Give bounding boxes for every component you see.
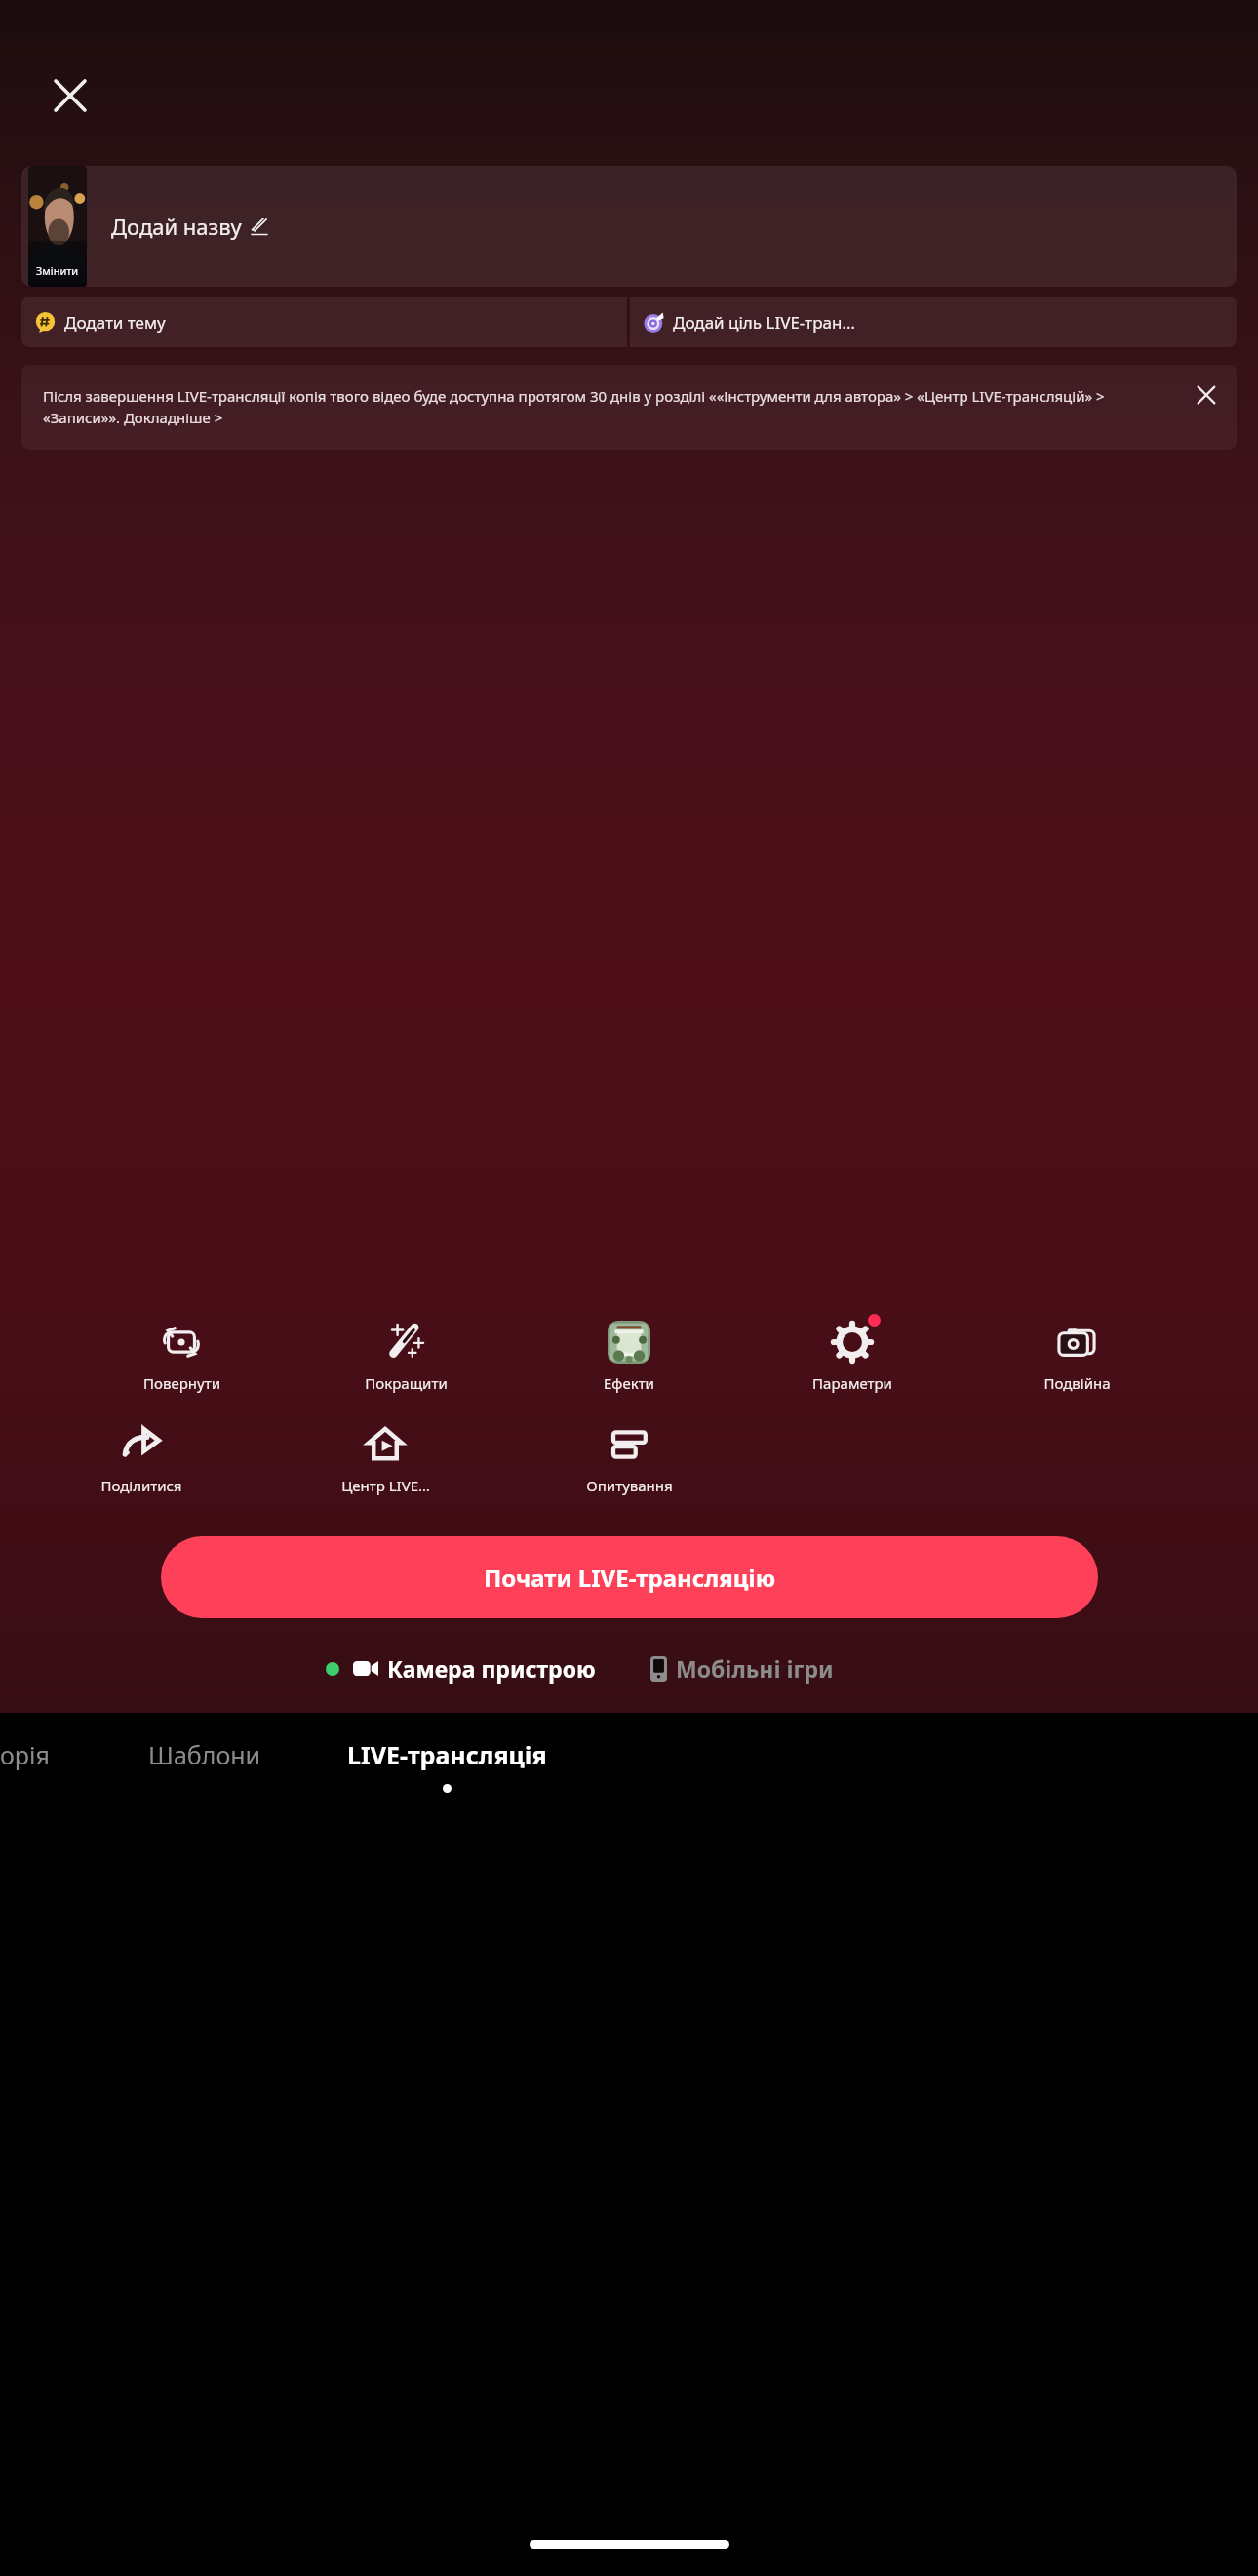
button[interactable]: Покращити (344, 1312, 467, 1397)
staticText: Змінити (36, 263, 79, 278)
staticText: Почати LIVE-трансляцію (484, 1562, 776, 1594)
button[interactable]: Додай ціль LIVE-тран… (630, 297, 1237, 347)
staticText: Подвійна (1043, 1373, 1111, 1393)
staticText: LIVE-трансляція (347, 1738, 547, 1771)
staticText: Додати тему (64, 311, 166, 334)
staticText: Камера пристрою (387, 1653, 596, 1684)
staticText: Опитування (586, 1476, 673, 1495)
staticText: Повернути (143, 1373, 220, 1393)
button[interactable]: Змінити (21, 166, 1237, 287)
staticText: орія (0, 1738, 50, 1771)
button[interactable]: Мобільні ігри (647, 1645, 838, 1691)
staticText: Додай назву (111, 212, 242, 241)
button[interactable]: Dismiss notice (1182, 371, 1231, 419)
button[interactable]: Подвійна (1015, 1312, 1138, 1397)
button[interactable]: Параметри (791, 1312, 914, 1397)
staticText: Після завершення LIVE-трансляції копія т… (43, 386, 1151, 428)
staticText: Параметри (812, 1373, 892, 1393)
staticText: Поділитися (100, 1476, 182, 1495)
button[interactable]: Камера пристрою (322, 1645, 600, 1691)
button[interactable]: Повернути (120, 1312, 243, 1397)
staticText: Шаблони (148, 1738, 261, 1771)
button[interactable]: Почати LIVE-трансляцію (161, 1536, 1098, 1618)
button[interactable]: LIVE-трансляція (347, 1738, 547, 1793)
button[interactable]: Close (35, 60, 105, 131)
button[interactable]: Додати тему (21, 297, 627, 347)
staticText: Покращити (365, 1373, 448, 1393)
button[interactable]: Опитування (568, 1414, 690, 1499)
staticText: Ефекти (604, 1373, 654, 1393)
staticText: Центр LIVE… (341, 1476, 430, 1495)
button[interactable]: орія (0, 1738, 57, 1771)
button[interactable]: Ефекти (568, 1312, 690, 1397)
button[interactable]: Центр LIVE… (324, 1414, 447, 1499)
button[interactable]: Поділитися (80, 1414, 203, 1499)
staticText: Додай ціль LIVE-тран… (673, 311, 855, 334)
button[interactable]: Шаблони (148, 1738, 261, 1771)
staticText: Мобільні ігри (676, 1653, 834, 1684)
